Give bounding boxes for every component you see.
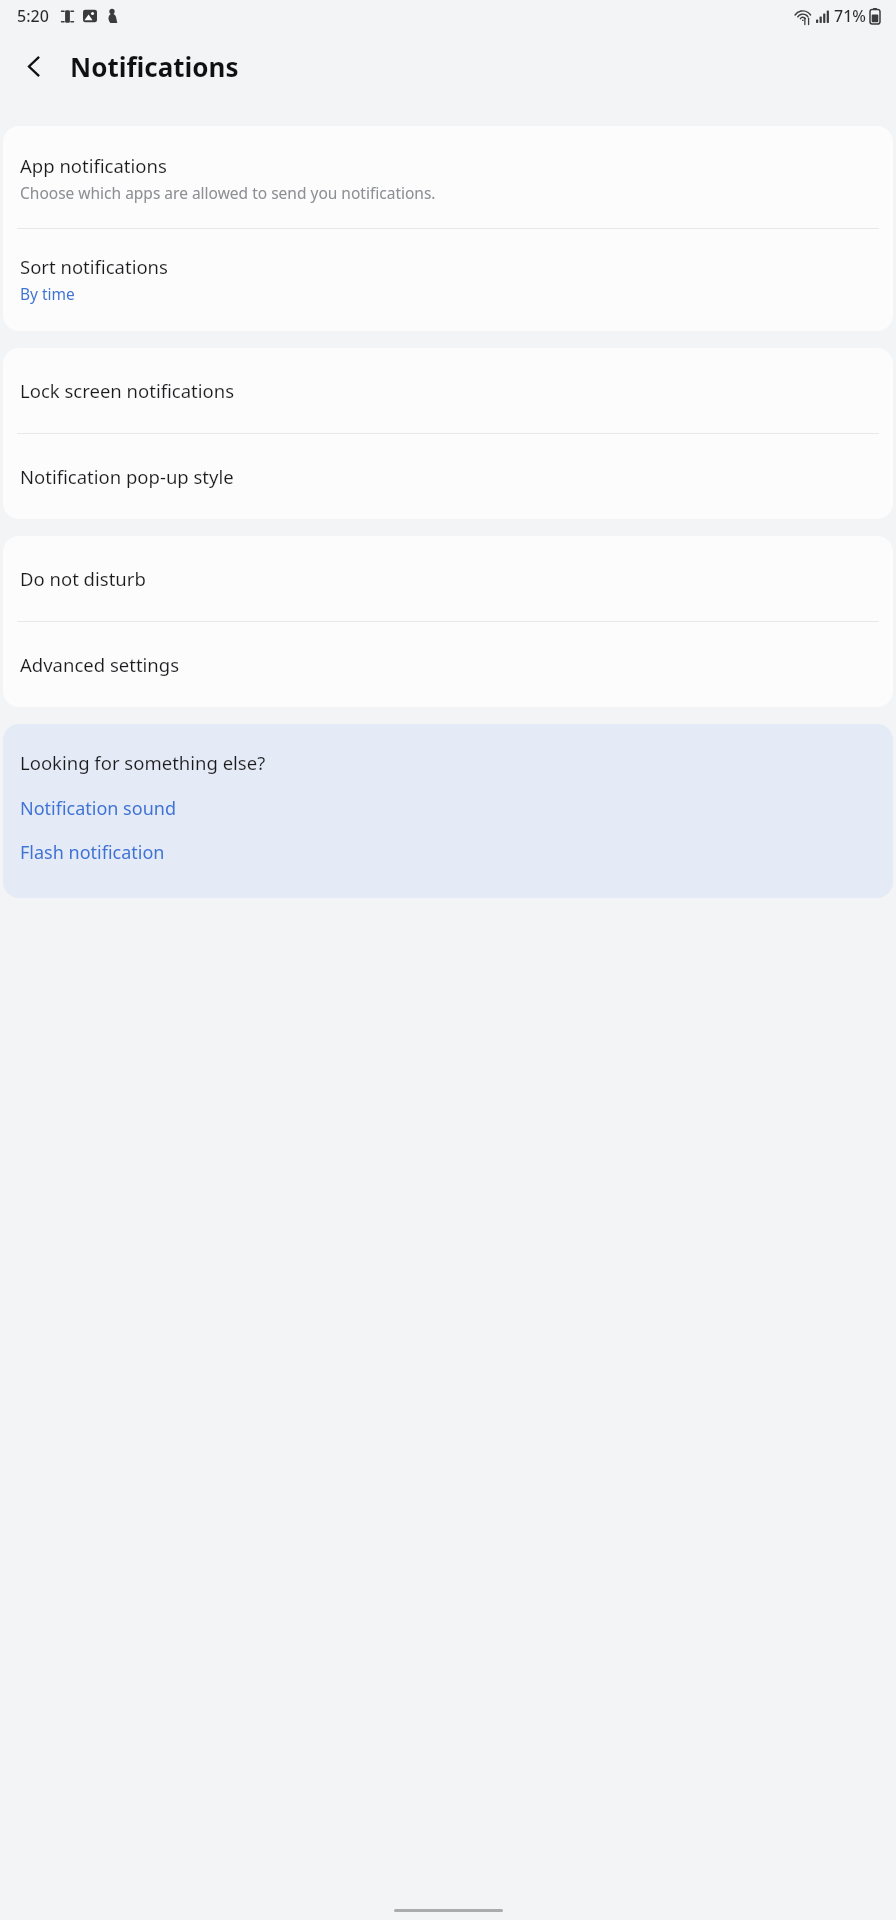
staticText: 71% (834, 5, 866, 27)
button[interactable]: Do not disturb (3, 536, 893, 621)
button[interactable]: Notification pop-up style (3, 434, 893, 519)
staticText: Choose which apps are allowed to send yo… (20, 182, 436, 203)
button[interactable]: Sort notifications (3, 229, 893, 331)
button[interactable]: Advanced settings (3, 622, 893, 707)
button[interactable]: App notifications (3, 126, 893, 228)
staticText: Do not disturb (20, 566, 146, 591)
staticText: Notification sound (20, 796, 176, 821)
button[interactable]: Flash notification (3, 836, 893, 869)
staticText: Notification pop-up style (20, 464, 234, 489)
staticText: App notifications (20, 153, 167, 178)
staticText: Notifications (70, 49, 239, 84)
staticText: Advanced settings (20, 652, 180, 677)
button[interactable]: Back (10, 42, 58, 90)
staticText: 5:20 (17, 5, 49, 27)
button[interactable]: Notification sound (3, 792, 893, 825)
staticText: Flash notification (20, 840, 165, 865)
staticText: By time (20, 283, 75, 304)
button[interactable]: Lock screen notifications (3, 348, 893, 433)
staticText: Looking for something else? (20, 750, 266, 775)
staticText: Lock screen notifications (20, 378, 234, 403)
staticText: Sort notifications (20, 254, 168, 279)
